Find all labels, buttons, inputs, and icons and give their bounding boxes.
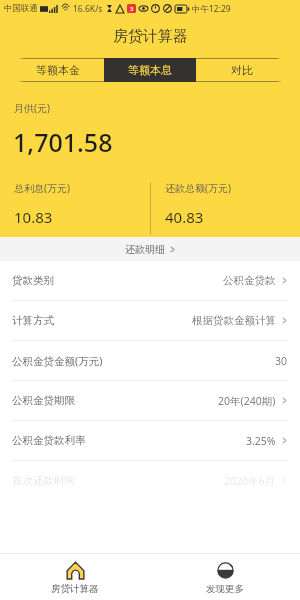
staticText: 还款明细	[125, 243, 165, 256]
staticText: 公积金贷款	[223, 274, 276, 287]
staticText: 公积金贷款利率	[12, 434, 86, 447]
button[interactable]: 发现更多	[150, 553, 300, 600]
staticText: 等额本息	[128, 63, 172, 77]
button[interactable]: 等额本金	[12, 58, 104, 82]
staticText: 计算方式	[12, 314, 54, 327]
staticText: 等额本金	[36, 63, 80, 77]
staticText: 中国联通	[4, 3, 38, 14]
staticText: 2020年6月	[224, 474, 276, 488]
staticText: 对比	[231, 63, 253, 77]
staticText: 公积金贷期限	[12, 394, 75, 407]
staticText: 还款总额(万元)	[165, 181, 231, 195]
button[interactable]: 计算方式	[0, 301, 300, 341]
button[interactable]: 公积金贷金额(万元)	[0, 341, 300, 381]
staticText: 房贷计算器	[51, 583, 99, 595]
staticText: 贷款类别	[12, 274, 54, 287]
button[interactable]: 还款明细	[0, 237, 300, 261]
button[interactable]: 对比	[196, 58, 288, 82]
button[interactable]: 公积金贷款利率	[0, 421, 300, 461]
staticText: 房贷计算器	[113, 27, 188, 46]
button[interactable]: 贷款类别	[0, 261, 300, 301]
staticText: 中午12:29	[192, 3, 231, 15]
staticText: 10.83	[14, 207, 53, 227]
button[interactable]: 等额本息	[104, 58, 196, 82]
staticText: 40.83	[165, 207, 204, 227]
staticText: 3.25%	[246, 434, 276, 448]
staticText: 首次还款时间	[12, 474, 75, 487]
staticText: 3	[130, 5, 134, 13]
staticText: 1,701.58	[13, 125, 113, 159]
button[interactable]: 房贷计算器	[0, 553, 150, 600]
staticText: 16.6K/s	[73, 3, 103, 15]
button[interactable]: 公积金贷期限	[0, 381, 300, 421]
staticText: 发现更多	[206, 583, 244, 595]
staticText: 30	[275, 354, 288, 368]
staticText: 公积金贷金额(万元)	[12, 354, 103, 368]
staticText: 20年(240期)	[218, 394, 276, 408]
button[interactable]: 首次还款时间	[0, 461, 300, 501]
staticText: 月供(元)	[14, 101, 50, 115]
staticText: 根据贷款金额计算	[192, 314, 276, 327]
staticText: 总利息(万元)	[14, 181, 70, 195]
